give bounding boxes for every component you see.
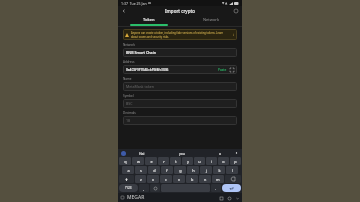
button[interactable]: Scan QR code <box>229 67 234 72</box>
button[interactable]: l <box>226 166 238 174</box>
button[interactable]: Help <box>232 7 240 15</box>
button[interactable]: Token <box>118 15 180 24</box>
staticText: Decimals <box>123 111 136 115</box>
button[interactable]: . <box>211 184 221 192</box>
button[interactable]: x <box>147 175 159 183</box>
staticText: g <box>179 168 182 173</box>
staticText: q <box>124 159 127 164</box>
staticText: BSC <box>126 101 133 106</box>
staticText: MEGAR <box>127 194 145 201</box>
staticText: MetaMask token <box>126 84 155 89</box>
staticText: d <box>153 168 156 173</box>
button[interactable]: i <box>206 157 217 165</box>
button[interactable]: 18 <box>123 116 237 125</box>
button[interactable]: z <box>135 175 146 183</box>
button[interactable]: t <box>170 157 181 165</box>
button[interactable]: g <box>174 166 186 174</box>
staticText: i <box>211 159 212 164</box>
button[interactable]: More info <box>231 33 235 37</box>
staticText: j <box>206 168 207 173</box>
staticText: z <box>140 177 142 182</box>
staticText: y <box>187 159 189 164</box>
staticText: , <box>143 186 145 191</box>
staticText: h <box>192 168 195 173</box>
button[interactable]: Paste <box>218 68 227 72</box>
button[interactable]: a <box>219 151 221 156</box>
button[interactable]: c <box>160 175 172 183</box>
button[interactable]: BSC <box>123 99 237 108</box>
button[interactable]: u <box>194 157 205 165</box>
button[interactable]: ?123 <box>119 184 138 192</box>
staticText: c <box>165 177 167 182</box>
staticText: . <box>215 186 217 191</box>
button[interactable]: Voice input <box>234 151 239 156</box>
button[interactable]: Keyboard switcher <box>120 195 125 200</box>
staticText: Network <box>123 43 136 47</box>
button[interactable]: Back <box>234 195 240 201</box>
staticText: f <box>166 168 168 173</box>
staticText: 18 <box>126 118 131 123</box>
button[interactable]: k <box>213 166 225 174</box>
staticText: 1:37 Tue 25 Jan <box>121 1 147 6</box>
button[interactable]: 0x4C5F9F70A5cbF5f4fc3036 <box>123 65 237 74</box>
staticText: v <box>178 177 180 182</box>
staticText: p <box>234 159 237 164</box>
button[interactable]: w <box>132 157 144 165</box>
staticText: Name <box>123 77 132 81</box>
button[interactable]: p <box>230 157 241 165</box>
button[interactable]: e <box>145 157 157 165</box>
button[interactable]: j <box>200 166 212 174</box>
button[interactable]: r <box>158 157 169 165</box>
button[interactable]: BNB Smart Chain <box>123 48 237 57</box>
staticText: Token <box>143 17 155 22</box>
button[interactable]: Enter <box>222 184 241 192</box>
staticText: r <box>163 159 165 164</box>
button[interactable]: o <box>218 157 229 165</box>
button[interactable]: s <box>135 166 147 174</box>
staticText: w <box>137 159 140 164</box>
button[interactable]: Recents <box>218 195 224 201</box>
staticText: n <box>204 177 207 182</box>
staticText: k <box>218 168 221 173</box>
staticText: a <box>127 168 130 173</box>
button[interactable]: Emoji <box>150 184 160 192</box>
button[interactable]: a <box>122 166 134 174</box>
staticText: l <box>232 168 233 173</box>
button[interactable]: MetaMask token <box>123 82 237 91</box>
button[interactable]: Backspace <box>225 175 241 183</box>
button[interactable]: Hai <box>139 151 145 156</box>
staticText: BNB Smart Chain <box>126 50 157 55</box>
button[interactable]: you <box>179 151 185 156</box>
staticText: b <box>191 177 194 182</box>
staticText: o <box>222 159 225 164</box>
button[interactable]: , <box>139 184 149 192</box>
button[interactable]: f <box>161 166 173 174</box>
staticText: Anyone can create a token, including fak… <box>131 31 230 38</box>
button[interactable]: q <box>119 157 131 165</box>
button[interactable]: y <box>182 157 193 165</box>
staticText: ℹ <box>233 33 234 37</box>
button[interactable]: v <box>173 175 185 183</box>
button[interactable]: b <box>186 175 198 183</box>
staticText: t <box>175 159 177 164</box>
button[interactable]: Back <box>120 7 128 15</box>
staticText: Import crypto <box>165 8 195 14</box>
staticText: x <box>152 177 155 182</box>
button[interactable]: Shift <box>119 175 134 183</box>
staticText: 0x4C5F9F70A5cbF5f4fc3036 <box>126 68 218 72</box>
staticText: e <box>150 159 153 164</box>
staticText: m <box>216 177 220 182</box>
button[interactable]: Home <box>226 195 232 201</box>
button[interactable]: d <box>148 166 160 174</box>
staticText: Address <box>123 60 135 64</box>
button[interactable]: Network <box>180 15 242 24</box>
staticText: ▼ ▲ <box>222 1 228 5</box>
staticText: ?123 <box>125 186 132 190</box>
button[interactable]: Voice or emoji <box>121 151 126 156</box>
staticText: Network <box>203 17 220 22</box>
button[interactable]: m <box>212 175 224 183</box>
button[interactable]: h <box>187 166 199 174</box>
staticText: Symbol <box>123 94 134 98</box>
button[interactable]: n <box>199 175 211 183</box>
